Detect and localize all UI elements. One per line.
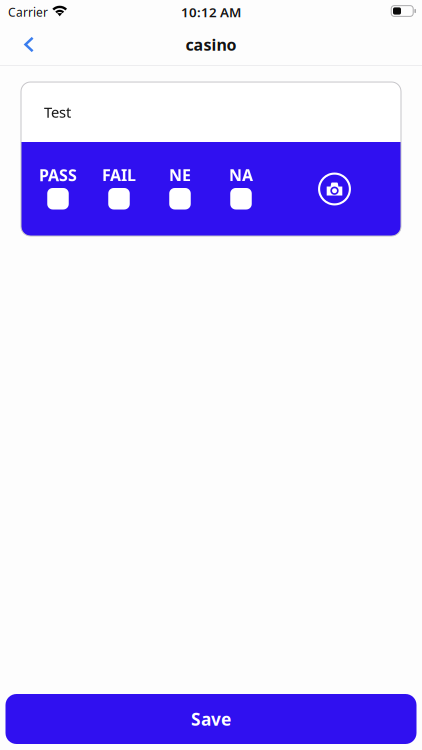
button[interactable]: Back bbox=[0, 24, 50, 65]
button[interactable]: Take photo bbox=[312, 142, 356, 236]
staticText: FAIL bbox=[102, 164, 136, 186]
staticText: Save bbox=[191, 707, 231, 730]
button[interactable]: Save bbox=[5, 694, 416, 744]
staticText: Test bbox=[44, 102, 71, 122]
button[interactable]: NA bbox=[210, 142, 271, 236]
staticText: Carrier bbox=[8, 4, 48, 20]
staticText: 10:12 AM bbox=[181, 3, 241, 21]
staticText: casino bbox=[185, 34, 236, 55]
button[interactable]: PASS bbox=[27, 142, 88, 236]
staticText: NE bbox=[169, 164, 191, 186]
staticText: PASS bbox=[39, 164, 77, 186]
staticText: NA bbox=[229, 164, 253, 186]
button[interactable]: FAIL bbox=[88, 142, 149, 236]
button[interactable]: NE bbox=[149, 142, 210, 236]
